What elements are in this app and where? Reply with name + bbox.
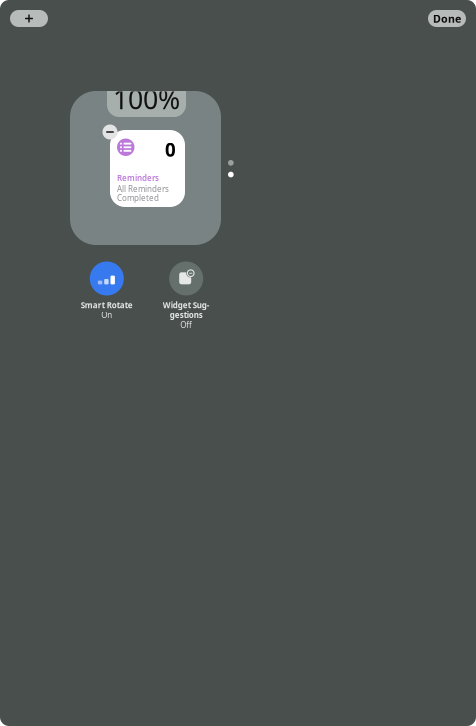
button[interactable]: Add widget [10,10,48,27]
staticText: gestions [170,310,203,320]
staticText: Reminders [117,172,159,183]
staticText: Widget Sug- [163,300,210,310]
staticText: 0 [165,137,176,162]
staticText: Completed [117,192,159,203]
staticText: 100% [113,81,180,116]
staticText: On [101,310,112,320]
staticText: Off [180,319,192,330]
button[interactable]: Smart Rotate, On [67,261,147,333]
staticText: Smart Rotate [81,300,133,310]
button[interactable]: Done [428,10,466,27]
button[interactable]: Remove widget [102,124,117,139]
button[interactable]: Widget Suggestions, Off [146,261,226,333]
staticText: All Reminders [117,183,169,194]
staticText: Done [433,11,461,26]
